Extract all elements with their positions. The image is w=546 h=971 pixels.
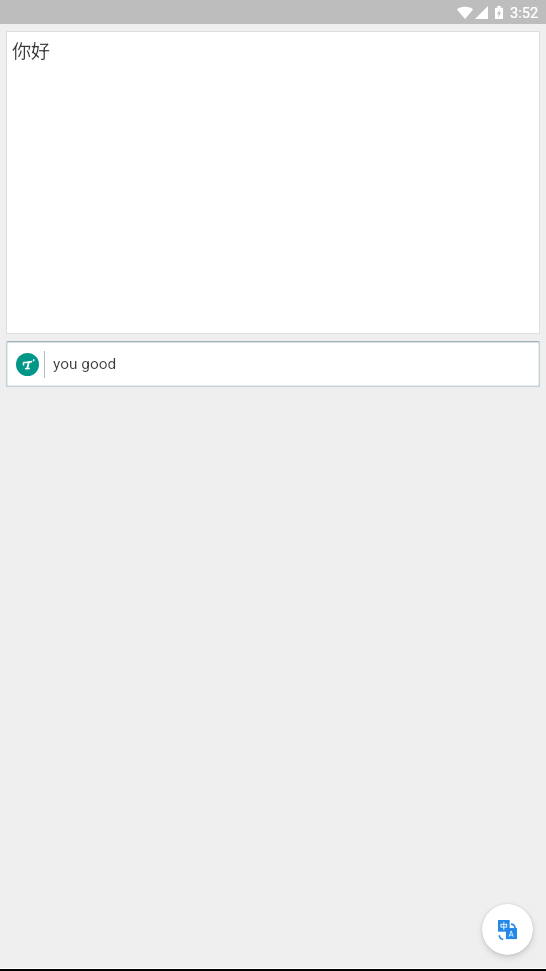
staticText: 你好 (12, 36, 51, 64)
button[interactable]: 你好 (6, 31, 540, 334)
staticText: you good (53, 355, 117, 373)
staticText: 3:52 (510, 4, 539, 21)
button[interactable]: Translate (482, 904, 533, 955)
button[interactable]: you good (6, 341, 540, 387)
